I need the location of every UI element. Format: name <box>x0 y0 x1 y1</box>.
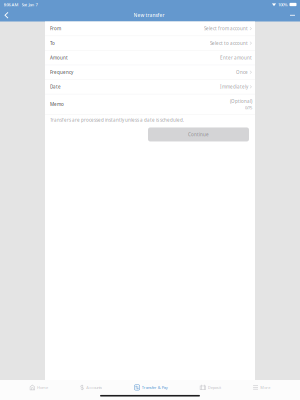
staticText: More <box>260 385 270 390</box>
staticText: Date <box>50 84 61 90</box>
staticText: (Optional) <box>230 98 252 104</box>
staticText: 100% <box>278 2 288 7</box>
staticText: Enter amount <box>220 55 252 61</box>
button[interactable]: Accounts <box>78 381 104 394</box>
button[interactable]: From <box>45 21 255 36</box>
button[interactable]: Amount <box>45 51 255 65</box>
staticText: 0/75 <box>245 105 252 110</box>
staticText: Select to account <box>210 40 248 46</box>
button[interactable]: Frequency <box>45 65 255 80</box>
button[interactable]: To <box>45 36 255 51</box>
staticText: Select from account <box>204 25 248 32</box>
staticText: 8:06 AM <box>3 2 18 7</box>
staticText: Sat Jan 7 <box>21 2 37 7</box>
staticText: From <box>50 25 61 32</box>
button[interactable]: Home <box>28 381 50 394</box>
button[interactable]: Deposit <box>198 381 223 394</box>
button[interactable]: More <box>251 381 272 394</box>
staticText: Accounts <box>86 385 102 390</box>
staticText: Deposit <box>208 385 221 390</box>
staticText: Continue <box>188 131 209 138</box>
staticText: Once <box>236 69 248 75</box>
button[interactable]: Date <box>45 80 255 94</box>
staticText: Amount <box>50 55 68 61</box>
staticText: Immediately <box>220 84 248 90</box>
staticText: Transfers are processed instantly unless… <box>50 117 184 123</box>
staticText: Memo <box>50 101 64 107</box>
staticText: To <box>50 40 55 46</box>
button[interactable]: More options <box>285 9 300 21</box>
button[interactable]: Continue <box>148 127 249 141</box>
staticText: Home <box>37 385 48 390</box>
staticText: Transfer & Pay <box>142 385 168 390</box>
button[interactable]: Transfer & Pay <box>132 381 170 394</box>
button[interactable]: Back <box>0 9 13 21</box>
staticText: Frequency <box>50 69 73 75</box>
staticText: New transfer <box>133 12 164 18</box>
button[interactable]: Memo <box>45 94 255 115</box>
